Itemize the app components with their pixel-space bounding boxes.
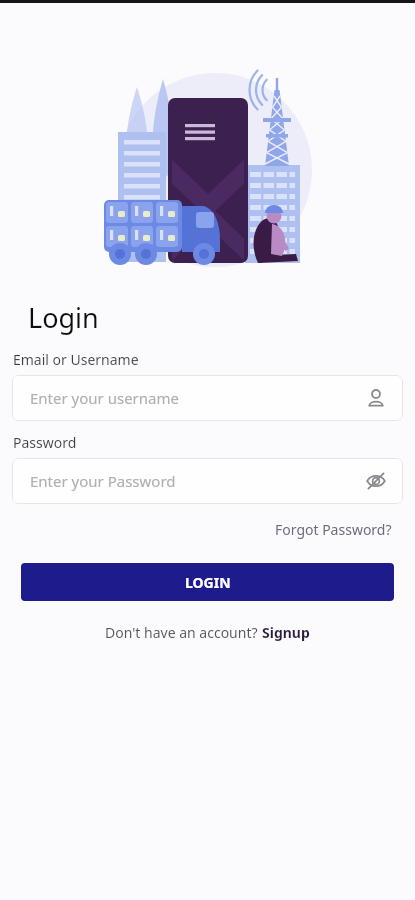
button[interactable]: LOGIN [21,563,394,601]
staticText: Password [13,433,77,452]
staticText: Login [28,299,99,336]
staticText: LOGIN [185,573,231,592]
staticText: Don't have an account? [105,623,262,642]
button[interactable]: Enter your Password [12,458,403,504]
staticText: Email or Username [13,350,139,369]
staticText: Enter your username [30,388,179,408]
button[interactable]: Signup [262,623,310,642]
staticText: Enter your Password [30,471,176,491]
button[interactable]: Account [363,385,389,411]
button[interactable]: Enter your username [12,375,403,421]
staticText: Signup [262,623,310,642]
staticText: Forgot Password? [275,520,392,539]
button[interactable]: Forgot Password? [275,518,415,541]
button[interactable]: Show password [363,468,389,494]
